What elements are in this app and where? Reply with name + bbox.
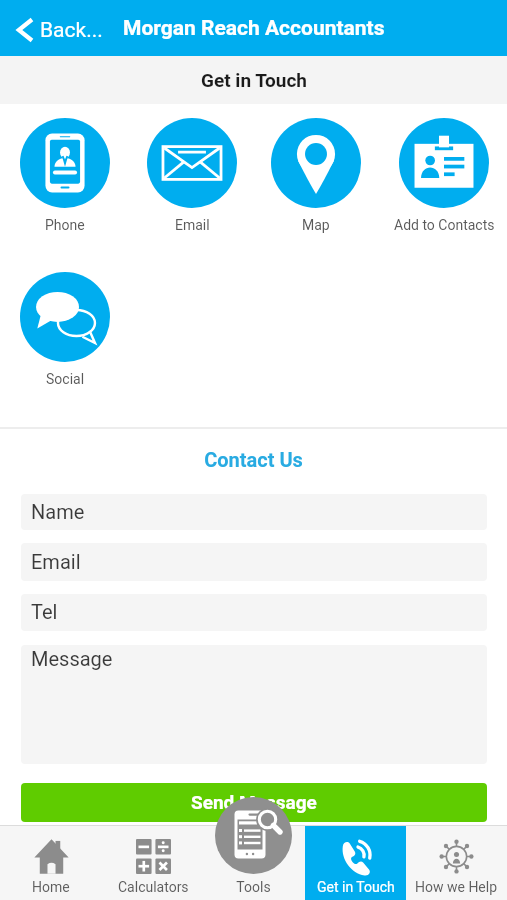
staticText: Email <box>31 550 81 573</box>
button[interactable]: Send Message <box>21 783 487 822</box>
staticText: Phone <box>45 217 85 233</box>
staticText: How we Help <box>415 879 498 895</box>
staticText: Social <box>46 371 85 387</box>
button[interactable]: Email <box>129 118 255 233</box>
button[interactable]: Calculators <box>102 826 204 900</box>
staticText: Back... <box>40 18 103 43</box>
staticText: Add to Contacts <box>394 217 495 233</box>
button[interactable]: Email <box>21 543 487 581</box>
button[interactable]: Back... <box>0 0 112 56</box>
button[interactable]: Map <box>253 118 379 233</box>
staticText: Name <box>31 500 85 523</box>
staticText: Morgan Reach Accountants <box>123 16 385 41</box>
button[interactable]: How we Help <box>406 826 507 900</box>
button[interactable]: Phone <box>2 118 128 233</box>
staticText: Calculators <box>118 879 189 895</box>
staticText: Map <box>302 217 330 233</box>
button[interactable]: Tel <box>21 594 487 631</box>
staticText: Contact Us <box>0 448 507 471</box>
staticText: Tel <box>31 600 58 623</box>
button[interactable]: Message <box>21 645 487 764</box>
staticText: Send Message <box>191 791 317 813</box>
button[interactable]: Name <box>21 494 487 530</box>
staticText: Home <box>32 879 70 895</box>
staticText: Get in Touch <box>201 69 307 91</box>
staticText: Get in Touch <box>317 879 395 895</box>
staticText: Tools <box>203 879 304 895</box>
button[interactable]: Add to Contacts <box>381 118 507 233</box>
staticText: Message <box>31 647 113 670</box>
button[interactable]: Get in Touch <box>305 826 406 900</box>
staticText: Email <box>175 217 210 233</box>
button[interactable]: Social <box>2 272 128 387</box>
button[interactable]: Home <box>0 826 102 900</box>
button[interactable] <box>204 826 305 900</box>
button[interactable]: Tools <box>215 797 292 874</box>
